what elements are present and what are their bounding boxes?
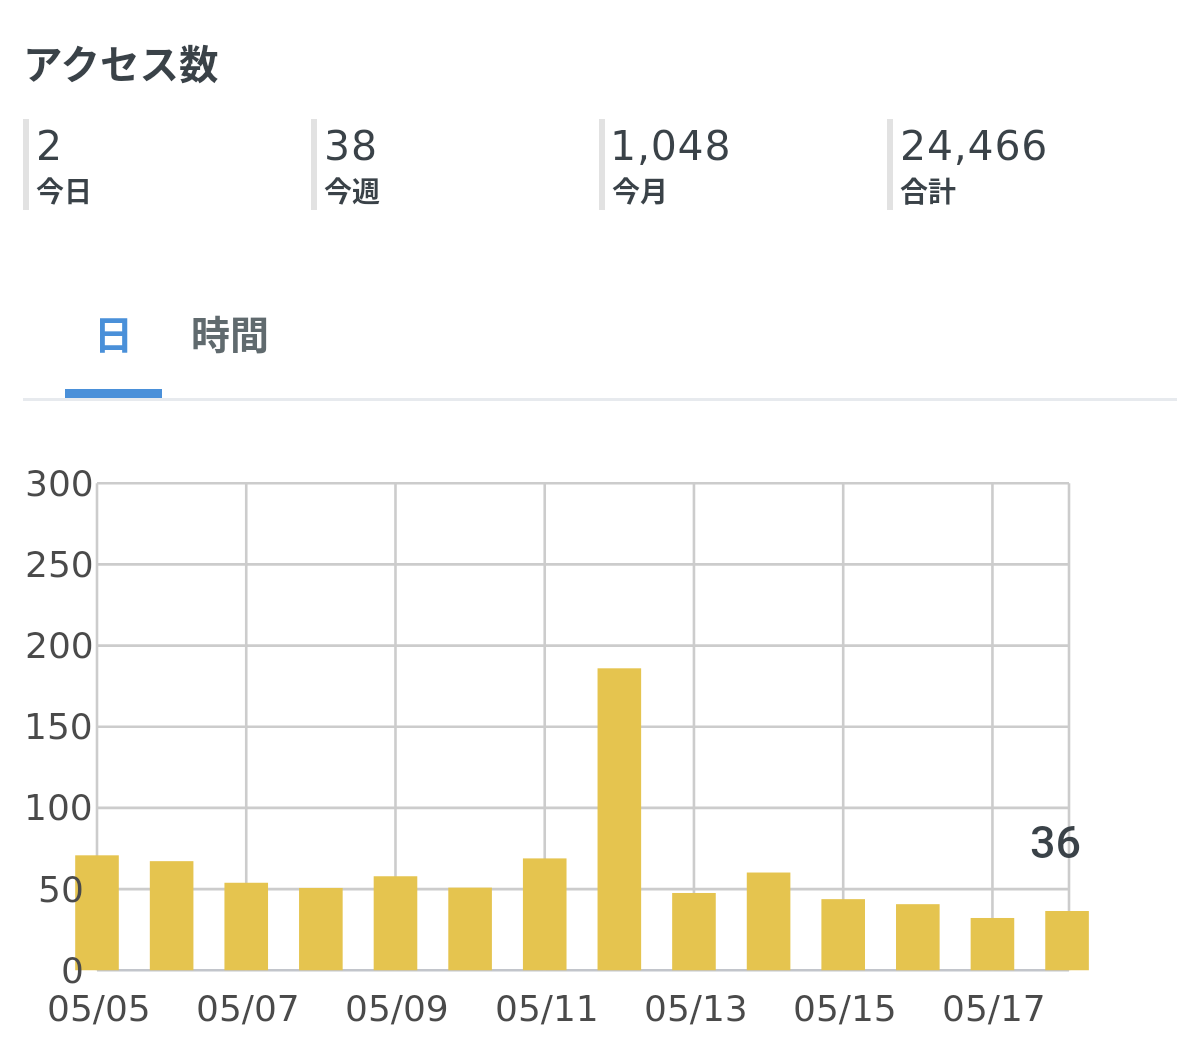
staticText: 05/15	[793, 988, 897, 1030]
staticText: 05/11	[495, 988, 599, 1030]
button[interactable]: 時間	[162, 282, 298, 398]
staticText: 250	[25, 544, 94, 586]
staticText: 05/09	[345, 988, 449, 1030]
staticText: 50	[38, 869, 84, 911]
staticText: 合計	[900, 170, 957, 211]
staticText: アクセス数	[23, 33, 219, 90]
button[interactable]: 日	[65, 282, 162, 398]
button[interactable]	[887, 112, 1169, 216]
staticText: 36	[1030, 816, 1082, 869]
staticText: 今週	[324, 170, 381, 211]
staticText: 2	[36, 122, 63, 170]
staticText: 150	[24, 706, 93, 748]
staticText: 300	[25, 463, 94, 505]
staticText: 0	[61, 950, 84, 992]
staticText: 100	[24, 787, 93, 829]
staticText: 38	[324, 122, 378, 170]
staticText: 05/13	[644, 988, 748, 1030]
staticText: 日	[94, 304, 134, 360]
button[interactable]	[311, 112, 593, 216]
button[interactable]	[599, 112, 881, 216]
staticText: 24,466	[900, 122, 1049, 170]
button[interactable]	[23, 112, 305, 216]
staticText: 200	[25, 625, 94, 667]
staticText: 05/05	[47, 988, 151, 1030]
staticText: 今日	[36, 170, 93, 211]
staticText: 1,048	[610, 122, 732, 170]
staticText: 05/17	[942, 988, 1046, 1030]
staticText: 05/07	[196, 988, 300, 1030]
staticText: 今月	[612, 170, 669, 211]
staticText: 時間	[191, 304, 270, 360]
